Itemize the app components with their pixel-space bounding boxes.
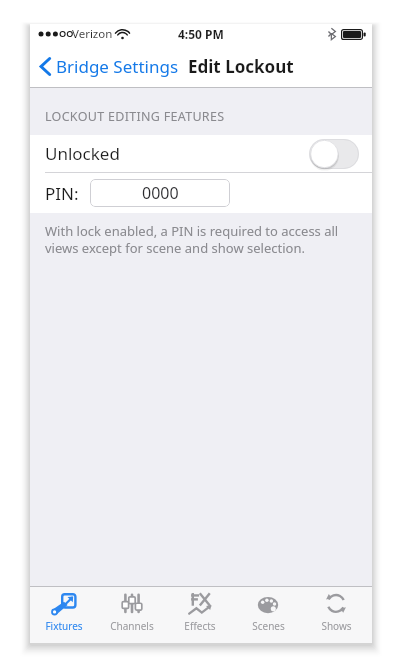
staticText: Unlocked bbox=[45, 142, 120, 165]
button[interactable]: Effects bbox=[166, 591, 234, 643]
button[interactable]: Shows bbox=[302, 591, 370, 643]
button[interactable]: Bridge Settings bbox=[35, 49, 183, 84]
staticText: 0000 bbox=[142, 182, 179, 204]
staticText: Bridge Settings bbox=[56, 55, 179, 78]
staticText: With lock enabled, a PIN is required to … bbox=[45, 222, 356, 257]
staticText: Edit Lockout bbox=[188, 55, 294, 78]
staticText: Scenes bbox=[252, 619, 285, 633]
staticText: LOCKOUT EDITING FEATURES bbox=[45, 108, 225, 125]
button[interactable]: 0000 bbox=[90, 179, 230, 207]
button[interactable]: Channels bbox=[98, 591, 166, 643]
button[interactable]: Unlocked bbox=[30, 135, 372, 172]
staticText: Shows bbox=[321, 619, 352, 633]
staticText: Channels bbox=[110, 619, 154, 633]
button[interactable]: Scenes bbox=[234, 591, 302, 643]
staticText: Fixtures bbox=[45, 619, 83, 633]
staticText: 4:50 PM bbox=[178, 26, 224, 42]
staticText: Effects bbox=[184, 619, 216, 633]
staticText: PIN: bbox=[45, 182, 79, 205]
button[interactable]: Unlocked toggle, off bbox=[309, 139, 359, 169]
staticText: Verizon bbox=[72, 26, 113, 42]
button[interactable]: Fixtures bbox=[30, 591, 98, 643]
